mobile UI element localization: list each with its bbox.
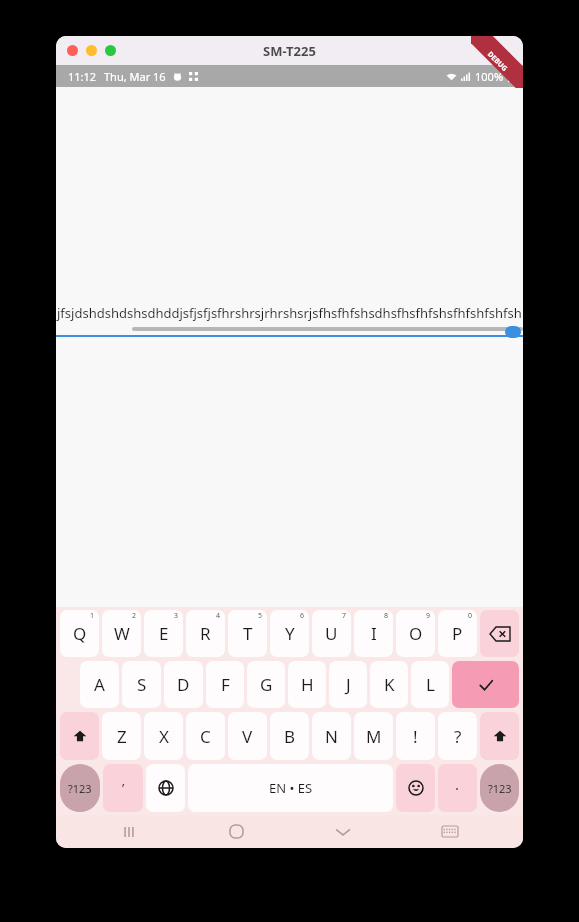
button[interactable]: Minimize [86, 45, 97, 56]
staticText: N [325, 725, 338, 748]
button[interactable]: T [228, 610, 267, 657]
button[interactable]: Q [60, 610, 99, 657]
staticText: O [409, 622, 423, 645]
staticText: V [242, 725, 253, 748]
staticText: EN • ES [269, 779, 313, 797]
staticText: ’ [122, 779, 125, 797]
button[interactable]: shift [60, 712, 99, 760]
button[interactable]: M [354, 712, 393, 760]
staticText: 2 [132, 611, 137, 621]
button[interactable]: I [354, 610, 393, 657]
staticText: S [137, 673, 147, 696]
staticText: DEBUG [485, 50, 510, 74]
button[interactable]: X [144, 712, 183, 760]
button[interactable]: bksp [480, 610, 519, 657]
staticText: 4 [216, 611, 221, 621]
button[interactable]: A [80, 661, 119, 708]
button[interactable]: Y [270, 610, 309, 657]
button[interactable]: G [247, 661, 285, 708]
staticText: 1 [90, 611, 95, 621]
button[interactable]: Cursor handle [505, 326, 521, 338]
staticText: X [159, 725, 169, 748]
button[interactable]: C [186, 712, 225, 760]
staticText: E [159, 622, 169, 645]
staticText: ? [454, 725, 462, 748]
staticText: 5 [258, 611, 263, 621]
staticText: D [177, 673, 190, 696]
staticText: ?123 [68, 781, 92, 796]
staticText: W [114, 622, 130, 645]
staticText: I [371, 622, 377, 645]
button[interactable]: P [438, 610, 477, 657]
button[interactable]: Close [67, 45, 78, 56]
button[interactable]: Home [219, 815, 253, 848]
button[interactable]: O [396, 610, 435, 657]
staticText: G [260, 673, 273, 696]
staticText: ! [413, 725, 418, 748]
button[interactable]: D [164, 661, 203, 708]
staticText: Thu, Mar 16 [104, 69, 166, 84]
staticText: Z [117, 725, 127, 748]
staticText: 11:12 [68, 69, 97, 84]
staticText: L [426, 673, 435, 696]
staticText: K [384, 673, 395, 696]
staticText: U [325, 622, 338, 645]
staticText: J [346, 673, 351, 696]
staticText: Y [285, 622, 295, 645]
button[interactable]: N [312, 712, 351, 760]
button[interactable]: shift [480, 712, 519, 760]
button[interactable]: L [411, 661, 449, 708]
staticText: Q [73, 622, 87, 645]
button[interactable]: H [288, 661, 326, 708]
button[interactable]: J [329, 661, 367, 708]
staticText: ?123 [488, 781, 512, 796]
button[interactable]: Recents [112, 815, 146, 848]
button[interactable]: S [122, 661, 161, 708]
button[interactable]: ?123 [60, 764, 100, 812]
button[interactable]: · [438, 764, 477, 812]
staticText: 3 [174, 611, 179, 621]
button[interactable]: E [144, 610, 183, 657]
staticText: R [200, 622, 211, 645]
staticText: SM-T225 [263, 42, 316, 60]
staticText: 0 [468, 611, 473, 621]
button[interactable]: F [206, 661, 244, 708]
staticText: C [200, 725, 211, 748]
button[interactable]: Hide keyboard [326, 815, 360, 848]
staticText: H [301, 673, 314, 696]
staticText: 8 [384, 611, 389, 621]
button[interactable]: Switch keyboard [433, 815, 467, 848]
button[interactable]: globe [146, 764, 185, 812]
button[interactable]: ’ [103, 764, 143, 812]
staticText: 6 [300, 611, 305, 621]
button[interactable]: enter [452, 661, 519, 708]
button[interactable]: ! [396, 712, 435, 760]
button[interactable]: emoji [396, 764, 435, 812]
button[interactable]: ?123 [480, 764, 519, 812]
staticText: B [284, 725, 296, 748]
button[interactable]: K [370, 661, 408, 708]
button[interactable]: W [102, 610, 141, 657]
staticText: M [366, 725, 382, 748]
button[interactable]: EN • ES [188, 764, 393, 812]
staticText: P [452, 622, 463, 645]
button[interactable]: Z [102, 712, 141, 760]
staticText: 9 [426, 611, 431, 621]
staticText: T [243, 622, 253, 645]
button[interactable]: R [186, 610, 225, 657]
button[interactable]: V [228, 712, 267, 760]
button[interactable]: ? [438, 712, 477, 760]
button[interactable]: Maximize [105, 45, 116, 56]
staticText: 100% [475, 69, 504, 84]
staticText: jfsjdshdshdshsdhddjsfjsfjsfhrshrsjrhrshs… [57, 304, 523, 322]
staticText: · [455, 778, 460, 798]
staticText: F [221, 673, 230, 696]
staticText: A [94, 673, 105, 696]
button[interactable]: U [312, 610, 351, 657]
button[interactable]: B [270, 712, 309, 760]
staticText: 7 [342, 611, 347, 621]
